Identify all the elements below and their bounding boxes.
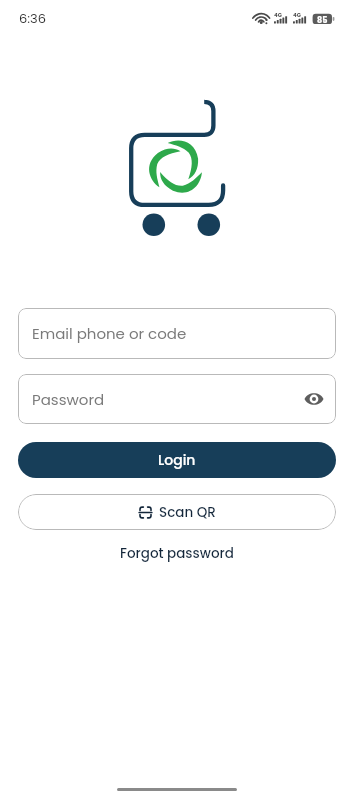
button[interactable]: Scan QR [18,494,336,530]
staticText: 6:36 [19,9,46,27]
button[interactable]: Show password [302,387,326,411]
staticText: Login [158,450,196,470]
button[interactable]: Email phone or code [18,308,336,359]
staticText: 85 [317,15,328,26]
staticText: Password [32,389,105,410]
staticText: 4G [293,11,301,19]
button[interactable]: Forgot password [120,544,234,563]
staticText: Email phone or code [32,323,187,344]
button[interactable]: Login [18,442,336,478]
button[interactable]: Password [18,374,336,424]
staticText: 4G [274,11,282,19]
staticText: Scan QR [159,503,216,522]
